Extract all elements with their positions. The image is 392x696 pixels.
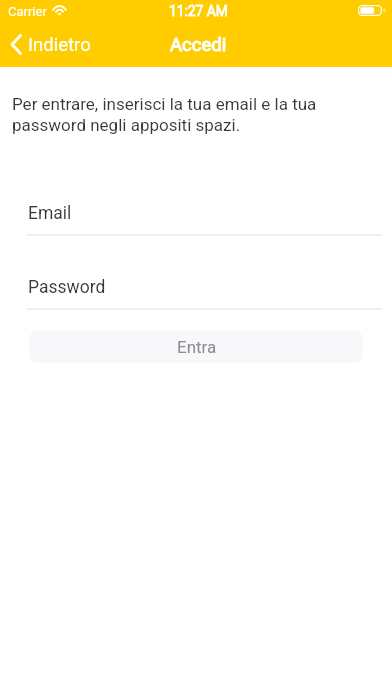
staticText: Entra: [177, 337, 217, 357]
button[interactable]: Password: [27, 271, 382, 310]
staticText: Carrier: [8, 4, 47, 19]
button[interactable]: Email: [27, 197, 382, 236]
staticText: 11:27 AM: [169, 3, 228, 19]
button[interactable]: Back: [0, 31, 101, 59]
staticText: Per entrare, inserisci la tua email e la…: [12, 94, 334, 135]
other: Back: [10, 34, 22, 55]
staticText: Accedi: [170, 34, 227, 56]
staticText: Indietro: [28, 34, 91, 56]
staticText: Email: [28, 203, 72, 224]
staticText: Password: [28, 277, 106, 298]
button[interactable]: Entra: [29, 330, 363, 363]
